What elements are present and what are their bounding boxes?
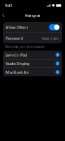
staticText: Hotspot xyxy=(24,13,40,18)
staticText: Others can join this network. xyxy=(5,45,45,49)
staticText: bear-rain xyxy=(42,35,58,41)
staticText: Studio Display xyxy=(5,61,29,66)
button[interactable]: Jamie's iPad xyxy=(3,51,62,59)
button[interactable]: Studio Display xyxy=(3,59,62,68)
button[interactable]: Back xyxy=(0,11,8,20)
staticText: 9:41 xyxy=(5,3,12,8)
button[interactable]: Allow Others xyxy=(3,22,62,32)
staticText: Jamie's iPad xyxy=(5,52,26,57)
staticText: Password xyxy=(5,35,22,41)
button[interactable]: MacBook Air xyxy=(3,68,62,76)
button[interactable]: Password xyxy=(3,33,62,43)
staticText: i xyxy=(57,70,58,74)
staticText: i xyxy=(57,53,58,57)
staticText: MacBook Air xyxy=(5,69,29,75)
staticText: i xyxy=(57,62,58,65)
staticText: Allow Others xyxy=(5,25,28,30)
